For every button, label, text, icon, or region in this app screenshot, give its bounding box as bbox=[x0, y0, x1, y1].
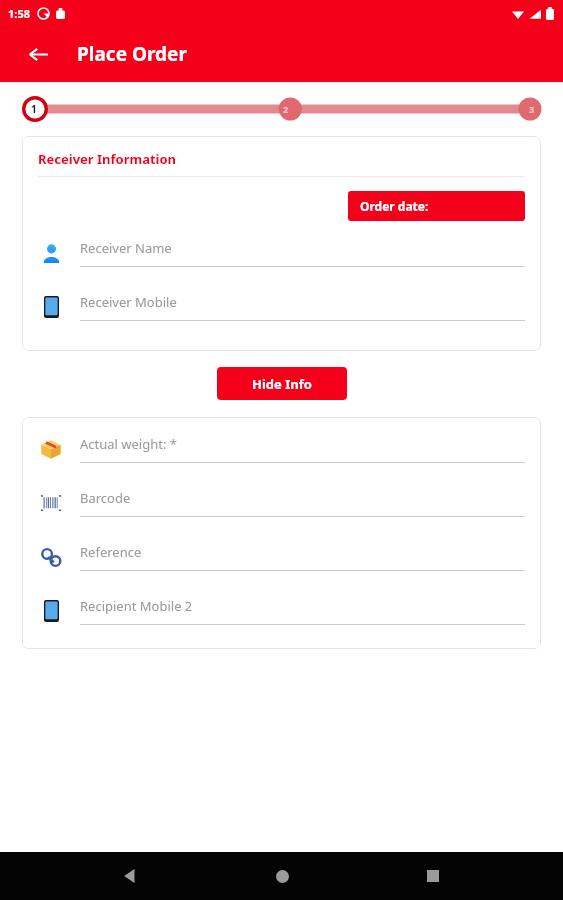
staticText: 1 bbox=[31, 102, 37, 116]
button[interactable]: Recipient Mobile 2 bbox=[38, 597, 525, 625]
button[interactable]: Barcode bbox=[38, 489, 525, 517]
staticText: Hide Info bbox=[252, 375, 312, 393]
staticText: Actual weight: * bbox=[80, 435, 177, 453]
button[interactable]: Receiver Name bbox=[38, 239, 525, 267]
button[interactable]: Back bbox=[18, 34, 58, 74]
staticText: 3 bbox=[529, 103, 535, 115]
button[interactable]: Hide Info bbox=[217, 367, 347, 400]
button[interactable]: Actual weight: * bbox=[38, 435, 525, 463]
button[interactable]: Recents bbox=[411, 854, 455, 898]
staticText: 1:58 bbox=[8, 6, 30, 21]
staticText: Receiver Mobile bbox=[80, 293, 177, 311]
staticText: Barcode bbox=[80, 489, 131, 507]
staticText: Order date: bbox=[360, 198, 429, 214]
staticText: Recipient Mobile 2 bbox=[80, 597, 193, 615]
staticText: Receiver Information bbox=[38, 150, 177, 168]
button[interactable]: Reference bbox=[38, 543, 525, 571]
button[interactable]: Back bbox=[108, 854, 152, 898]
staticText: Receiver Name bbox=[80, 239, 172, 257]
staticText: Reference bbox=[80, 543, 142, 561]
button[interactable]: Receiver Mobile bbox=[38, 293, 525, 321]
staticText: Place Order bbox=[77, 41, 187, 67]
button[interactable]: Order date: bbox=[348, 191, 525, 221]
staticText: 2 bbox=[283, 103, 289, 115]
button[interactable]: Home bbox=[260, 854, 304, 898]
